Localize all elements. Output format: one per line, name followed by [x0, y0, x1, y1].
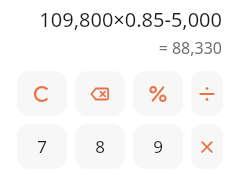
button[interactable]: Clear	[17, 71, 67, 116]
button[interactable]: 9	[133, 124, 183, 169]
staticText: 9	[153, 135, 163, 158]
button[interactable]: 7	[17, 124, 67, 169]
button[interactable]: 8	[75, 124, 125, 169]
staticText: 7	[37, 135, 47, 158]
button[interactable]: Backspace	[75, 71, 125, 116]
button[interactable]: Percent	[133, 71, 183, 116]
staticText: 109,800×0.85-5,000	[16, 6, 222, 33]
staticText: = 88,330	[16, 37, 222, 59]
button[interactable]: Divide	[191, 71, 223, 116]
staticText: 8	[95, 135, 105, 158]
button[interactable]: Multiply	[191, 124, 223, 169]
